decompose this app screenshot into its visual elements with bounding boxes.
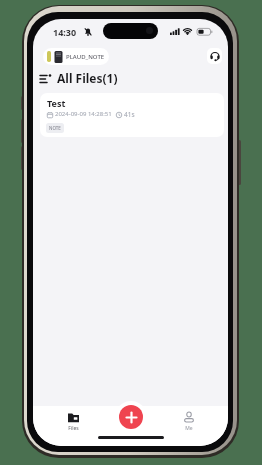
staticText: 14:30 — [53, 26, 77, 38]
button[interactable] — [119, 405, 143, 429]
button[interactable]: PLAUD_NOTE — [43, 48, 109, 65]
staticText: Me — [185, 425, 193, 432]
button[interactable] — [207, 48, 222, 64]
staticText: 2024-09-09 14:28:51 — [55, 110, 112, 118]
staticText: PLAUD_NOTE — [66, 53, 105, 61]
staticText: Test — [47, 97, 66, 109]
button[interactable]: Files — [61, 412, 85, 432]
staticText: NOTE — [49, 125, 61, 131]
staticText: All Files(1) — [57, 70, 118, 86]
button[interactable]: Me — [177, 412, 201, 432]
staticText: Files — [68, 425, 79, 432]
staticText: 41s — [124, 110, 135, 119]
button[interactable]: Test — [40, 93, 224, 137]
